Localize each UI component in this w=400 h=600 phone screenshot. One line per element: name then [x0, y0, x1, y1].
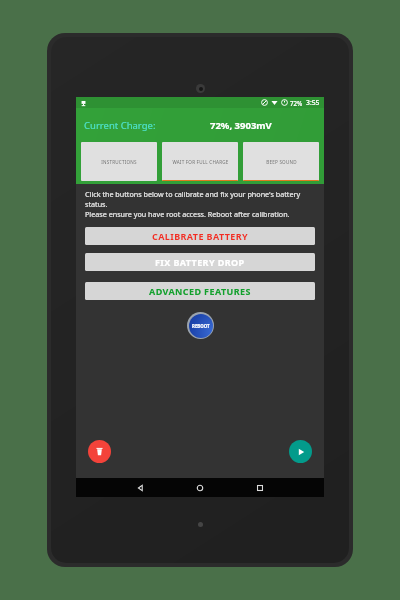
button[interactable]: ADVANCED FEATURES — [85, 282, 315, 300]
button[interactable]: BEEP SOUND — [243, 142, 319, 181]
staticText: REBOOT — [192, 323, 210, 329]
button[interactable]: REBOOT — [187, 312, 214, 339]
button[interactable]: INSTRUCTIONS — [81, 142, 157, 181]
staticText: 72%, 3903mV — [210, 119, 272, 132]
staticText: Click the buttons below to calibrate and… — [85, 189, 315, 219]
button[interactable]: Start — [289, 440, 312, 463]
button[interactable]: Home — [192, 480, 208, 496]
button[interactable]: Recent apps — [252, 480, 268, 496]
button[interactable]: CALIBRATE BATTERY — [85, 227, 315, 245]
button[interactable]: Back — [132, 480, 148, 496]
staticText: ADVANCED FEATURES — [149, 285, 251, 297]
staticText: 3:55 — [306, 98, 320, 107]
staticText: 72% — [290, 99, 303, 107]
staticText: CALIBRATE BATTERY — [152, 230, 249, 242]
staticText: BEEP SOUND — [266, 159, 297, 165]
button[interactable]: Delete — [88, 440, 111, 463]
button[interactable]: WAIT FOR FULL CHARGE — [162, 142, 238, 181]
staticText: INSTRUCTIONS — [101, 159, 137, 165]
staticText: Current Charge: — [84, 119, 156, 132]
button[interactable]: FIX BATTERY DROP — [85, 253, 315, 271]
staticText: FIX BATTERY DROP — [155, 256, 245, 268]
staticText: WAIT FOR FULL CHARGE — [172, 159, 229, 165]
